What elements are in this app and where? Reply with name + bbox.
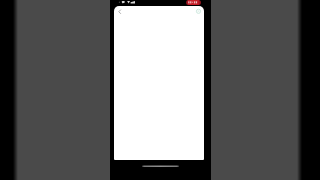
button[interactable]: Recording indicator [186, 0, 201, 5]
button[interactable]: Back [115, 6, 125, 16]
button[interactable]: Account [192, 6, 202, 16]
button[interactable]: Home [140, 164, 181, 168]
